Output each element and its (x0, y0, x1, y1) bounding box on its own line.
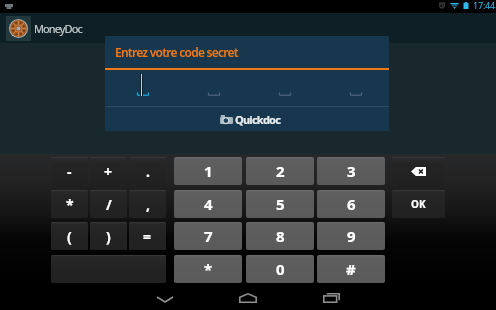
button[interactable]: ) (90, 222, 127, 250)
button[interactable]: + (90, 157, 127, 185)
button[interactable]: MoneyDoc app icon (6, 16, 31, 41)
button[interactable]: * (174, 255, 242, 283)
staticText: 9 (347, 226, 356, 246)
staticText: * (204, 259, 213, 279)
staticText: # (346, 259, 356, 279)
staticText: - (67, 162, 72, 181)
button[interactable]: 5 (246, 190, 314, 218)
button[interactable]: 2 (246, 157, 314, 185)
staticText: Entrez votre code secret (115, 44, 238, 60)
button[interactable]: Quickdoc (105, 107, 389, 131)
staticText: . (146, 162, 150, 181)
button[interactable]: = (129, 222, 166, 250)
staticText: 2 (276, 161, 285, 181)
staticText: 8 (276, 226, 285, 246)
button[interactable]: * (51, 190, 88, 218)
staticText: MoneyDoc (34, 21, 82, 36)
button[interactable]: 4 (174, 190, 242, 218)
staticText: * (66, 195, 74, 214)
staticText: + (104, 162, 113, 181)
button[interactable]: 0 (246, 255, 314, 283)
staticText: OK (411, 197, 426, 211)
button[interactable]: . (129, 157, 166, 185)
staticText: / (106, 195, 112, 214)
button[interactable]: , (129, 190, 166, 218)
button[interactable]: 9 (317, 222, 385, 250)
staticText: 0 (276, 259, 285, 279)
staticText: 17:44 (473, 0, 496, 11)
staticText: 5 (276, 194, 285, 214)
staticText: 1 (204, 161, 213, 181)
staticText: 4 (204, 194, 213, 214)
button[interactable]: 6 (317, 190, 385, 218)
button[interactable]: 1 (174, 157, 242, 185)
button[interactable]: / (90, 190, 127, 218)
staticText: ) (106, 227, 111, 246)
button[interactable]: Home (223, 285, 273, 310)
staticText: , (146, 195, 150, 214)
button[interactable]: Recent apps (307, 285, 357, 310)
button[interactable]: 3 (317, 157, 385, 185)
staticText: ( (67, 227, 72, 246)
staticText: = (143, 227, 152, 246)
button[interactable]: Hide keyboard (140, 285, 190, 310)
button[interactable]: OK (392, 190, 445, 218)
staticText: 6 (347, 194, 356, 214)
button[interactable]: Delete (392, 157, 445, 185)
staticText: 3 (347, 161, 356, 181)
staticText: Quickdoc (235, 112, 281, 127)
button[interactable]: # (317, 255, 385, 283)
staticText: 7 (204, 226, 213, 246)
button[interactable]: Space (51, 255, 166, 283)
button[interactable]: 8 (246, 222, 314, 250)
button[interactable]: 7 (174, 222, 242, 250)
button[interactable]: ( (51, 222, 88, 250)
button[interactable]: - (51, 157, 88, 185)
